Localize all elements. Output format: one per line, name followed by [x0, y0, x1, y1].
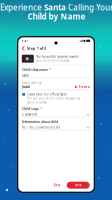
staticText: Next	[75, 183, 81, 187]
staticText: Preview	[79, 85, 90, 89]
staticText: *	[39, 107, 41, 111]
button[interactable]: Step 1 of 3	[18, 44, 94, 52]
button[interactable]: 5 years old	[22, 112, 90, 117]
staticText: *	[48, 68, 50, 72]
staticText: The beautiful surprise awaits	[36, 55, 78, 58]
staticText: Back	[54, 183, 61, 187]
staticText: Child by Name	[27, 11, 85, 22]
staticText: Listen with my	[22, 81, 41, 85]
staticText: Jacob	[22, 74, 29, 77]
staticText: Santa Christmas	[27, 101, 46, 104]
button[interactable]: He / she is a wonderful kid	[22, 125, 90, 130]
staticText: your child this Christmas	[36, 59, 69, 62]
staticText: Child's age	[22, 107, 39, 111]
staticText: 5 years old	[22, 113, 37, 116]
button[interactable]: Next	[67, 182, 90, 189]
staticText: Jacob	[22, 85, 30, 89]
staticText: 9:41	[22, 39, 29, 42]
button[interactable]: Back	[51, 182, 64, 188]
staticText: Step 1 of 3	[27, 46, 46, 51]
staticText: Information about child	[22, 120, 58, 124]
staticText: He / she is a wonderful kid	[22, 126, 60, 129]
staticText: Child's first name	[22, 68, 48, 72]
staticText: I want more fun official Santa	[27, 93, 66, 96]
staticText: You and your child's other messages at	[27, 97, 80, 100]
staticText: Experience Santa Calling Your	[0, 2, 112, 13]
button[interactable]: Jacob	[22, 73, 90, 78]
button[interactable]: The beautiful surprise awaits	[18, 53, 94, 65]
button[interactable]: Preview	[75, 85, 90, 89]
